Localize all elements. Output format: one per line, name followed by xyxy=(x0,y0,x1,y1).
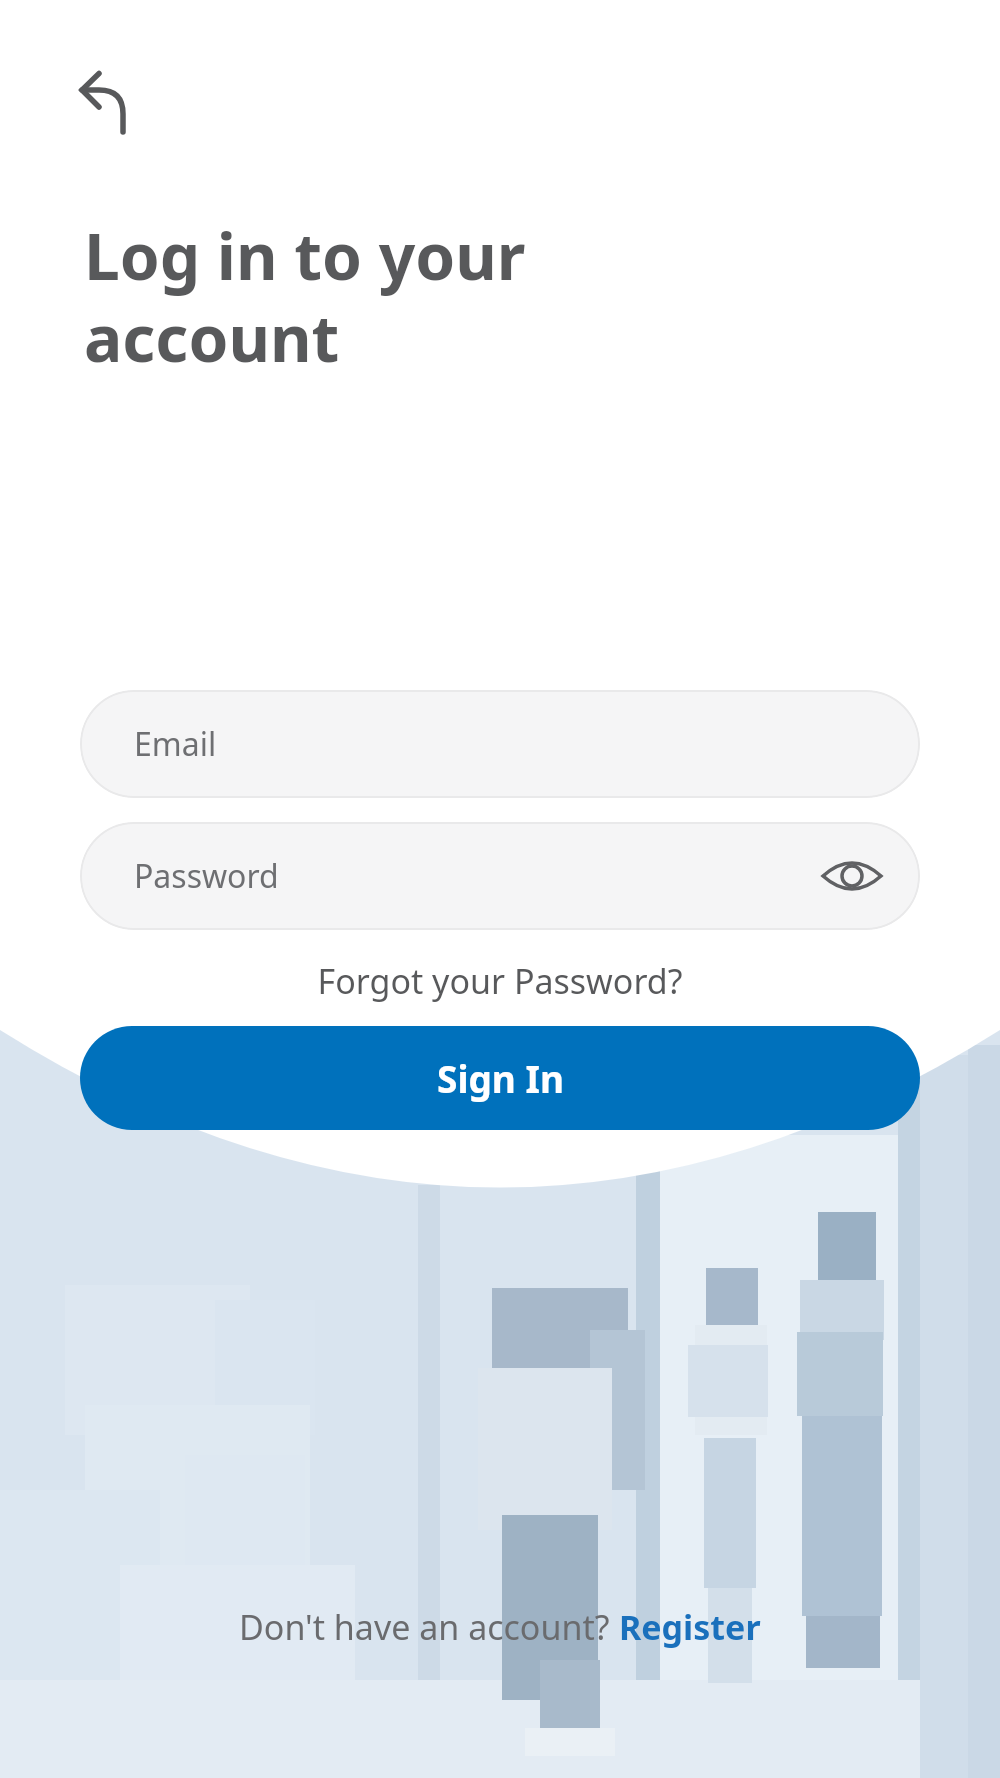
staticText: Don't have an account? xyxy=(239,1604,619,1650)
button[interactable] xyxy=(820,844,884,908)
button[interactable]: Don't have an account? xyxy=(0,1604,1000,1650)
button[interactable]: Password xyxy=(80,822,920,930)
staticText: Password xyxy=(134,854,279,898)
staticText: Register xyxy=(619,1604,761,1650)
staticText: Log in to your account xyxy=(84,212,526,381)
staticText: Sign In xyxy=(437,1053,564,1103)
button[interactable]: Email xyxy=(80,690,920,798)
button[interactable]: Sign In xyxy=(80,1026,920,1130)
staticText: Email xyxy=(134,722,217,766)
button[interactable]: Forgot your Password? xyxy=(0,958,1000,1004)
button[interactable] xyxy=(66,58,138,130)
